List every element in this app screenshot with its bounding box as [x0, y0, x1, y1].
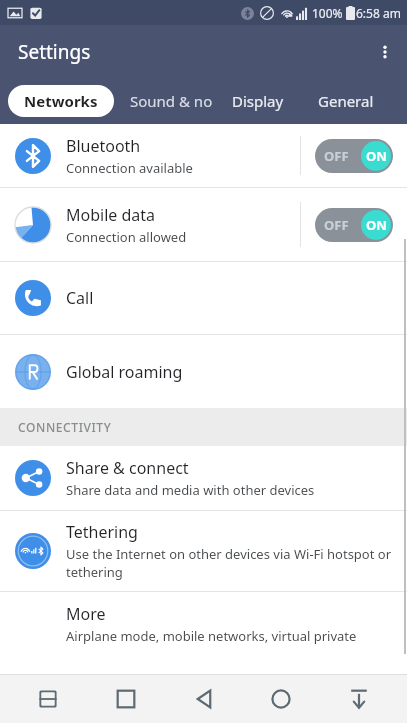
button[interactable]: Home [251, 674, 311, 723]
staticText: Mobile data [66, 204, 156, 226]
button[interactable]: OFF [315, 208, 393, 242]
staticText: More [66, 603, 106, 625]
button[interactable]: Back [174, 674, 234, 723]
staticText: ON [366, 216, 387, 234]
staticText: Use the Internet on other devices via Wi… [66, 545, 397, 581]
staticText: OFF [324, 147, 349, 165]
button[interactable]: General [318, 91, 374, 111]
button[interactable]: OFF [315, 139, 393, 173]
staticText: Global roaming [66, 361, 183, 383]
staticText: Share & connect [66, 457, 189, 479]
button[interactable]: More options [363, 30, 407, 74]
button[interactable]: Display [232, 91, 284, 111]
button[interactable]: Global roaming [0, 335, 407, 408]
staticText: 6:58 am [356, 5, 401, 21]
staticText: Display [232, 91, 284, 111]
staticText: Tethering [66, 521, 138, 543]
button[interactable]: Sound & no [130, 91, 218, 111]
staticText: OFF [324, 216, 349, 234]
staticText: Settings [18, 39, 91, 65]
button[interactable]: Recent apps [96, 674, 156, 723]
button[interactable]: Share & connect [0, 446, 407, 510]
staticText: Bluetooth [66, 135, 141, 157]
staticText: Call [66, 287, 94, 309]
button[interactable]: Hide navigation bar [329, 674, 389, 723]
staticText: General [318, 91, 374, 111]
button[interactable]: Mobile data [0, 188, 407, 261]
button[interactable]: Dual window [18, 674, 78, 723]
button[interactable]: More [0, 592, 407, 656]
staticText: Connection available [66, 159, 193, 177]
staticText: Networks [24, 91, 98, 111]
button[interactable]: Tethering [0, 511, 407, 591]
staticText: Connection allowed [66, 228, 187, 246]
staticText: CONNECTIVITY [18, 419, 112, 435]
staticText: Sound & no [130, 91, 213, 111]
button[interactable]: Bluetooth [0, 124, 407, 187]
staticText: Share data and media with other devices [66, 481, 315, 499]
button[interactable]: Networks [8, 85, 114, 117]
staticText: ON [366, 147, 387, 165]
staticText: Airplane mode, mobile networks, virtual … [66, 627, 397, 645]
button[interactable]: Call [0, 262, 407, 334]
staticText: 100% [312, 5, 343, 21]
